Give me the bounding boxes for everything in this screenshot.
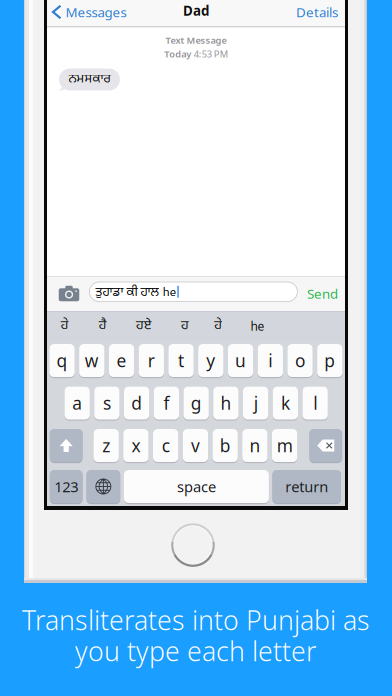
staticText: b <box>220 434 231 457</box>
staticText: z <box>102 434 110 457</box>
staticText: ਨਮਸਕਾਰ <box>68 71 110 88</box>
staticText: you type each letter <box>75 633 317 669</box>
staticText: ਹੇ <box>61 317 69 335</box>
staticText: he <box>250 318 264 334</box>
staticText: q <box>56 349 67 372</box>
button[interactable]: f <box>154 386 179 419</box>
button[interactable]: b <box>212 429 238 462</box>
button[interactable]: x <box>123 429 148 462</box>
button[interactable]: s <box>94 386 119 419</box>
staticText: 123 <box>54 477 78 496</box>
button[interactable]: k <box>273 386 298 419</box>
staticText: Send <box>307 285 338 302</box>
staticText: t <box>178 349 184 372</box>
button[interactable]: he <box>240 311 274 341</box>
staticText: Today <box>164 48 191 60</box>
button[interactable]: z <box>93 429 119 462</box>
staticText: ਹ <box>181 317 189 335</box>
button[interactable]: h <box>213 386 238 419</box>
staticText: f <box>163 391 169 414</box>
button[interactable]: ਹੇ <box>48 311 82 341</box>
button[interactable]: ਹਏ <box>126 311 160 341</box>
button[interactable]: u <box>228 344 253 377</box>
staticText: k <box>281 391 290 414</box>
button[interactable]: Shift <box>50 429 83 462</box>
button[interactable]: j <box>243 386 268 419</box>
staticText: Dad <box>183 2 209 19</box>
button[interactable]: ਹੈ <box>86 311 120 341</box>
button[interactable]: a <box>64 386 90 419</box>
staticText: Transliterates into Punjabi as <box>22 602 370 638</box>
staticText: r <box>148 349 155 372</box>
button[interactable]: ਹੇ <box>201 311 235 341</box>
staticText: Details <box>296 3 338 21</box>
staticText: m <box>277 434 293 457</box>
staticText: ਹਏ <box>136 317 151 335</box>
button[interactable]: Delete <box>309 429 342 462</box>
button[interactable]: w <box>79 344 104 377</box>
staticText: a <box>72 391 82 414</box>
staticText: i <box>268 349 272 372</box>
button[interactable]: ਹ <box>168 311 202 341</box>
button[interactable]: l <box>302 386 328 419</box>
staticText: d <box>131 391 142 414</box>
staticText: u <box>235 349 246 372</box>
staticText: ਤੁਹਾਡਾ ਕੀ ਹਾਲ he <box>95 282 176 301</box>
button[interactable]: v <box>183 429 208 462</box>
button[interactable]: e <box>109 344 134 377</box>
button[interactable]: i <box>258 344 283 377</box>
staticText: y <box>206 349 215 372</box>
staticText: space <box>177 477 216 496</box>
button[interactable]: d <box>124 386 149 419</box>
staticText: ਹੈ <box>99 317 107 335</box>
staticText: v <box>191 434 200 457</box>
staticText: ਹੇ <box>214 317 222 335</box>
button[interactable]: p <box>317 344 342 377</box>
button[interactable]: t <box>168 344 194 377</box>
staticText: return <box>285 477 328 496</box>
button[interactable]: Camera <box>53 276 85 311</box>
staticText: 4:53 PM <box>194 48 228 60</box>
staticText: n <box>249 434 260 457</box>
button[interactable]: Numbers <box>50 470 83 503</box>
staticText: e <box>117 349 127 372</box>
button[interactable]: Next keyboard <box>86 470 120 503</box>
staticText: s <box>103 391 111 414</box>
button[interactable]: c <box>153 429 178 462</box>
staticText: Messages <box>65 3 126 21</box>
staticText: x <box>131 434 140 457</box>
staticText: p <box>324 349 335 372</box>
button[interactable]: g <box>183 386 209 419</box>
button[interactable]: o <box>287 344 313 377</box>
button[interactable]: Details <box>291 0 338 25</box>
staticText: w <box>85 349 99 372</box>
button[interactable]: n <box>242 429 267 462</box>
staticText: g <box>191 391 202 414</box>
button[interactable]: Send <box>300 276 338 311</box>
button[interactable]: space <box>124 470 269 503</box>
button[interactable]: Return <box>272 470 341 503</box>
staticText: h <box>220 391 231 414</box>
button[interactable]: m <box>272 429 297 462</box>
staticText: Text Message <box>165 34 226 46</box>
staticText: o <box>295 349 305 372</box>
button[interactable]: Messages <box>53 0 138 25</box>
staticText: c <box>162 434 170 457</box>
staticText: l <box>313 391 317 414</box>
button[interactable]: r <box>139 344 164 377</box>
button[interactable]: y <box>198 344 223 377</box>
staticText: j <box>254 391 258 414</box>
button[interactable]: q <box>49 344 75 377</box>
